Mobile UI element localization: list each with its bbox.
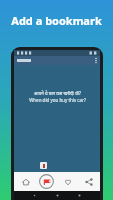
- staticText: आपने ये कार कब खरीदी थी?: [34, 90, 81, 96]
- staticText: When did you buy this car?: [29, 97, 86, 103]
- button[interactable]: Home: [16, 172, 35, 191]
- button[interactable]: Bookmarks: [37, 172, 56, 191]
- button[interactable]: Favorites: [58, 172, 77, 191]
- button[interactable]: Share: [79, 172, 98, 191]
- staticText: Add a bookmark: [11, 13, 102, 28]
